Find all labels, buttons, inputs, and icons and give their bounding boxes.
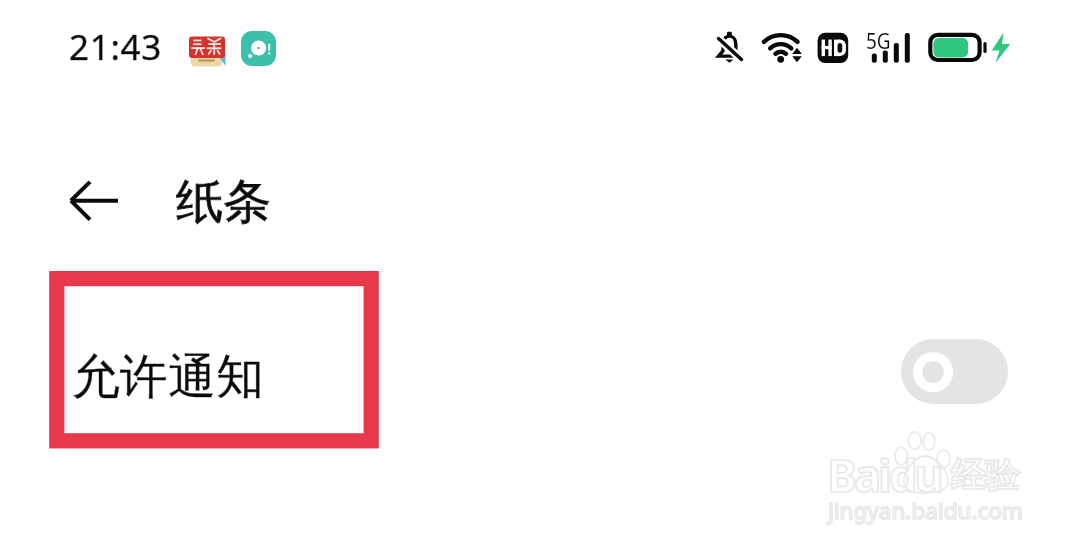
button[interactable]: 允许通知 xyxy=(0,312,1080,432)
staticText: 21:43 xyxy=(69,23,162,71)
button[interactable]: 返回 xyxy=(52,166,136,236)
staticText: jingyan.baidu.com xyxy=(828,495,1023,526)
staticText: 纸条 xyxy=(176,172,271,232)
staticText: 允许通知 xyxy=(72,347,264,407)
button[interactable]: 允许通知开关 xyxy=(901,339,1008,404)
staticText: 5G xyxy=(866,25,891,55)
staticText: Baidu xyxy=(827,444,942,505)
staticText: 经验 xyxy=(951,454,1019,497)
